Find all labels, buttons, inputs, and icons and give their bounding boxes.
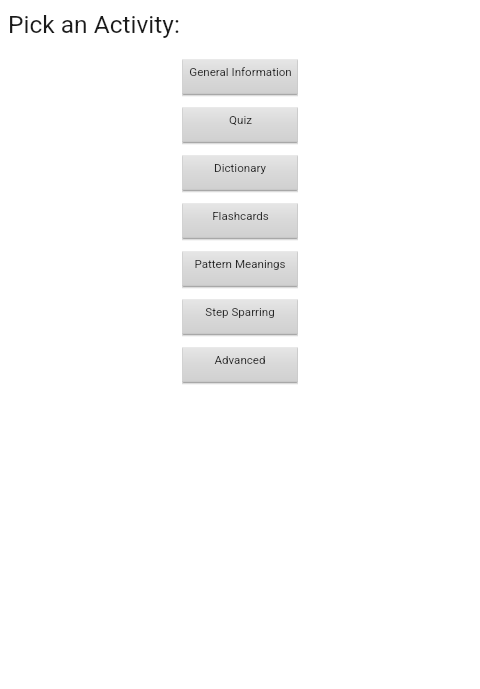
button[interactable]: General Information — [182, 59, 298, 97]
button[interactable]: Quiz — [182, 107, 298, 145]
button[interactable]: Step Sparring — [182, 299, 298, 337]
staticText: Pick an Activity: — [8, 10, 180, 39]
button[interactable]: Flashcards — [182, 203, 298, 241]
staticText: Advanced — [214, 353, 266, 367]
staticText: Flashcards — [212, 209, 269, 223]
button[interactable]: Dictionary — [182, 155, 298, 193]
staticText: Quiz — [229, 113, 252, 127]
button[interactable]: Advanced — [182, 347, 298, 385]
button[interactable]: Pattern Meanings — [182, 251, 298, 289]
staticText: Step Sparring — [205, 305, 275, 319]
staticText: General Information — [189, 65, 292, 79]
staticText: Pattern Meanings — [194, 257, 286, 271]
staticText: Dictionary — [214, 161, 266, 175]
